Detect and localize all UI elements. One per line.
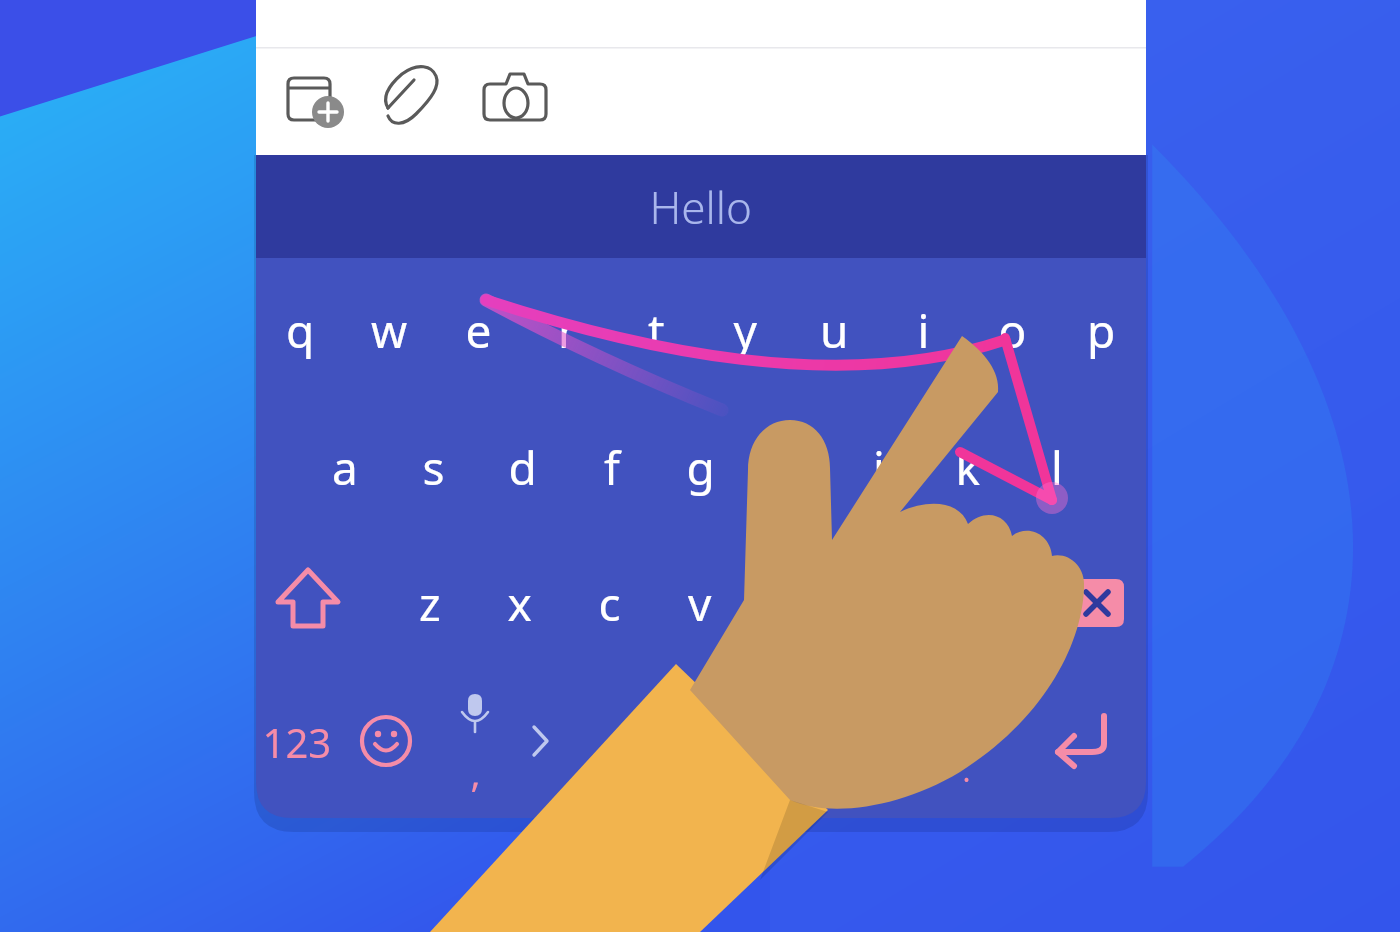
other: Swipe keyboard demo (0, 0, 1400, 932)
button[interactable]: Swipe keyboard demo (0, 0, 1400, 932)
